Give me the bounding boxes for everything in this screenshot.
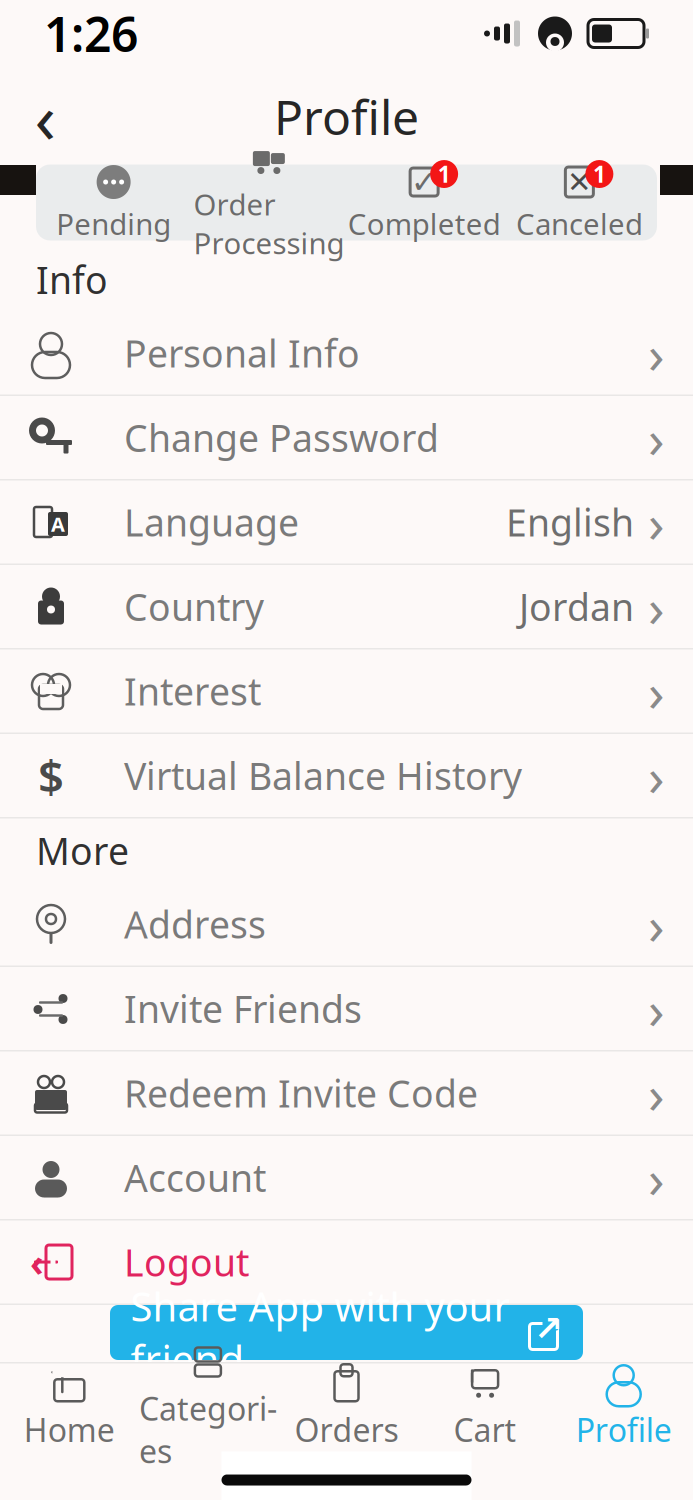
staticText: Profile bbox=[576, 1408, 672, 1451]
button[interactable]: ✕ bbox=[502, 164, 657, 240]
staticText: More bbox=[36, 826, 129, 875]
staticText: › bbox=[648, 656, 665, 726]
staticText: › bbox=[648, 740, 665, 811]
button[interactable]: Categories bbox=[139, 1363, 277, 1451]
button[interactable]: $ bbox=[0, 734, 693, 817]
staticText: Completed bbox=[348, 204, 501, 243]
staticText: ↗ bbox=[534, 1309, 563, 1348]
staticText: Order Processing bbox=[193, 184, 344, 262]
staticText: ‹ bbox=[30, 1237, 44, 1287]
staticText: Jordan bbox=[519, 582, 634, 631]
staticText: Redeem Invite Code bbox=[124, 1068, 478, 1118]
staticText: English bbox=[506, 497, 634, 547]
staticText: › bbox=[648, 318, 665, 388]
staticText: Cart bbox=[454, 1408, 517, 1451]
button[interactable]: ‹ bbox=[0, 1220, 693, 1303]
staticText: 1 bbox=[593, 159, 606, 189]
button[interactable]: ✓ bbox=[346, 164, 502, 240]
button[interactable]: Home bbox=[0, 1363, 139, 1451]
button[interactable]: Interest bbox=[0, 649, 693, 732]
staticText: ‹ bbox=[34, 70, 55, 163]
staticText: › bbox=[648, 402, 665, 473]
button[interactable]: Redeem Invite Code bbox=[0, 1051, 693, 1134]
staticText: › bbox=[648, 889, 665, 959]
staticText: Share App with your friend bbox=[130, 1279, 510, 1386]
staticText: › bbox=[648, 973, 665, 1044]
staticText: Language bbox=[124, 497, 299, 547]
staticText: 1 bbox=[438, 159, 451, 189]
button[interactable]: Cart bbox=[416, 1363, 554, 1451]
staticText: Virtual Balance History bbox=[124, 751, 522, 800]
staticText: › bbox=[648, 1058, 665, 1128]
staticText: Info bbox=[36, 255, 108, 304]
button[interactable]: Invite Friends bbox=[0, 967, 693, 1050]
button[interactable]: Order Processing bbox=[191, 164, 346, 240]
staticText: Country bbox=[124, 582, 264, 631]
button[interactable]: Country bbox=[0, 565, 693, 648]
staticText: Address bbox=[124, 899, 266, 949]
button[interactable]: Change Password bbox=[0, 396, 693, 479]
button[interactable]: Back bbox=[10, 81, 80, 151]
staticText: Canceled bbox=[516, 204, 643, 243]
staticText: $ bbox=[38, 745, 64, 806]
staticText: Account bbox=[124, 1153, 266, 1202]
staticText: › bbox=[648, 571, 665, 642]
staticText: › bbox=[648, 487, 665, 557]
staticText: Change Password bbox=[124, 413, 439, 462]
staticText: Logout bbox=[124, 1237, 249, 1287]
staticText: A bbox=[51, 511, 65, 537]
staticText: Invite Friends bbox=[124, 984, 362, 1033]
staticText: › bbox=[648, 1142, 665, 1213]
staticText: Home bbox=[24, 1408, 115, 1451]
button[interactable]: Account bbox=[0, 1136, 693, 1219]
button[interactable]: Pending bbox=[36, 164, 191, 240]
button[interactable]: Orders bbox=[277, 1363, 416, 1451]
staticText: Categories bbox=[139, 1387, 277, 1472]
staticText: 1:26 bbox=[44, 2, 138, 65]
staticText: ✓ bbox=[411, 164, 438, 200]
staticText: Pending bbox=[56, 204, 171, 243]
button[interactable]: A bbox=[0, 480, 693, 563]
button[interactable]: Share App with your friend bbox=[110, 1305, 583, 1360]
button[interactable]: Personal Info bbox=[0, 311, 693, 394]
staticText: Personal Info bbox=[124, 328, 360, 378]
button[interactable]: Profile bbox=[554, 1363, 693, 1451]
staticText: ✕ bbox=[567, 165, 592, 199]
staticText: Orders bbox=[294, 1408, 398, 1451]
button[interactable]: Address bbox=[0, 882, 693, 965]
staticText: Interest bbox=[124, 666, 261, 716]
staticText: Profile bbox=[274, 85, 419, 148]
